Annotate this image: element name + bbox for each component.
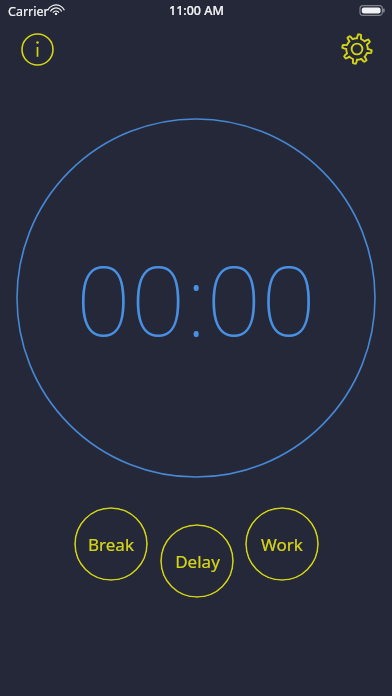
button[interactable]: Break (74, 507, 148, 581)
staticText: Delay (175, 550, 220, 573)
staticText: Carrier (8, 3, 49, 20)
button[interactable]: Info (17, 29, 57, 69)
staticText: Work (261, 533, 303, 556)
staticText: 11:00 AM (169, 2, 224, 19)
staticText: Break (88, 533, 134, 556)
button[interactable]: Work (245, 507, 319, 581)
staticText: 00:00 (76, 233, 316, 364)
button[interactable]: Settings (337, 29, 377, 69)
button[interactable]: Delay (160, 524, 234, 598)
